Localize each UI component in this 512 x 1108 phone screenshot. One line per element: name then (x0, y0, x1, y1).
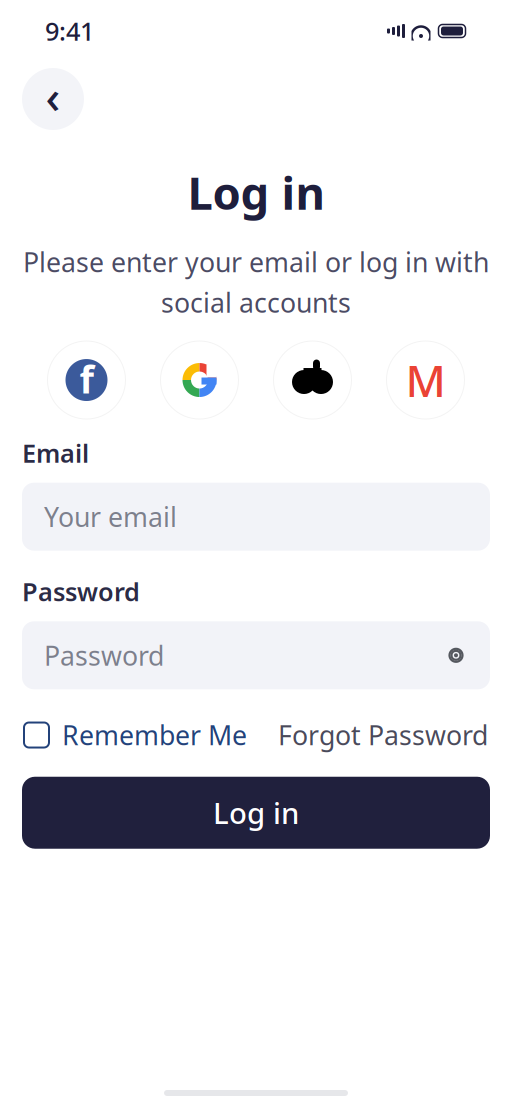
button[interactable]: Remember Me (24, 717, 247, 753)
staticText: Log in (213, 793, 299, 832)
button[interactable]: Forgot Password (278, 717, 488, 753)
staticText: M (405, 351, 445, 409)
button[interactable]: Log in with Gmail (379, 334, 471, 426)
staticText: ‹ (45, 66, 60, 126)
button[interactable]: Password (22, 621, 490, 689)
staticText: Password (44, 638, 164, 673)
button[interactable]: Log in with Google (153, 334, 245, 426)
staticText: Password (22, 575, 140, 608)
staticText: f (79, 354, 93, 404)
staticText: Remember Me (62, 717, 247, 753)
button[interactable]: Log in with Apple (266, 334, 358, 426)
staticText: Email (22, 436, 89, 470)
staticText: Please enter your email or log in with (23, 244, 489, 280)
button[interactable]: Your email (22, 483, 490, 551)
staticText: Forgot Password (278, 717, 488, 753)
button[interactable]: Back (22, 68, 84, 130)
staticText: Log in (187, 162, 324, 222)
staticText: 9:41 (45, 14, 94, 48)
button[interactable]: Log in (22, 777, 490, 849)
button[interactable]: Log in with Facebook (40, 334, 132, 426)
staticText: Your email (44, 499, 177, 534)
staticText: social accounts (161, 285, 351, 320)
